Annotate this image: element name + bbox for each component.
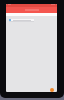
button[interactable]: Add	[50, 88, 54, 92]
button[interactable]: Add item	[9, 19, 34, 21]
